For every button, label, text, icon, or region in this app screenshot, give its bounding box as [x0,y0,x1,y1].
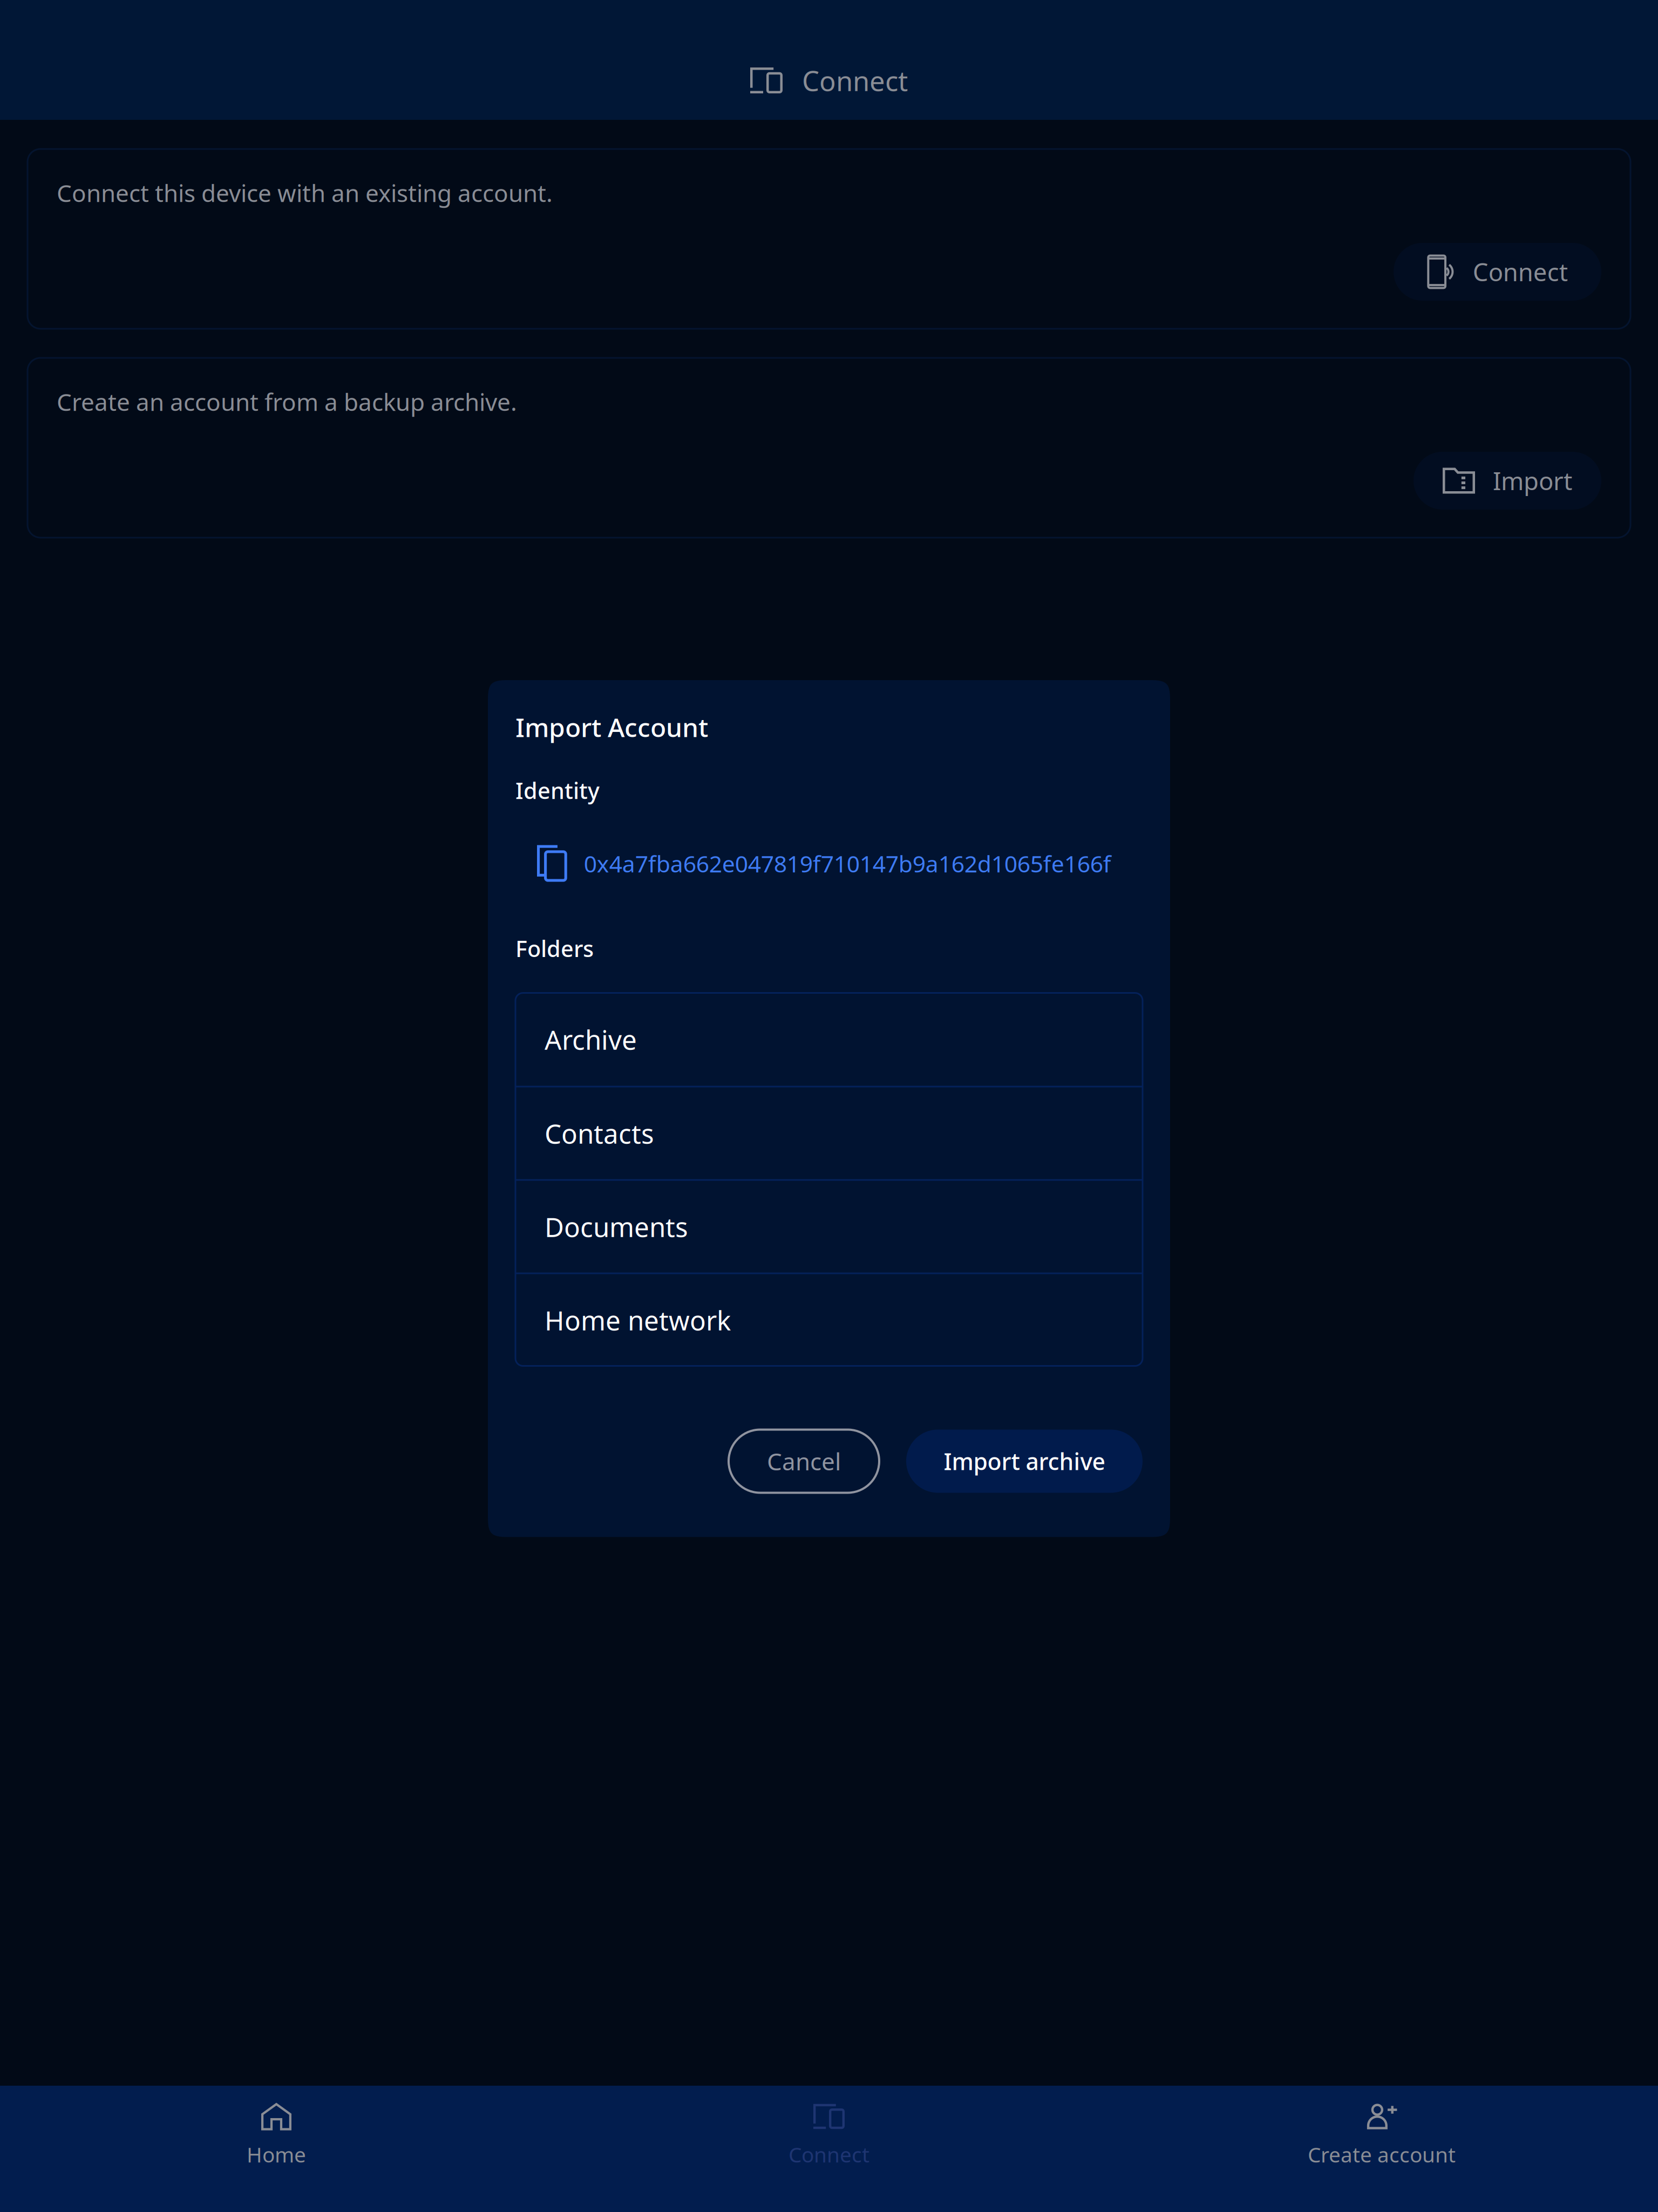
button[interactable]: Home [0,2086,553,2212]
button[interactable]: Home network [515,1273,1143,1366]
staticText: Connect this device with an existing acc… [57,177,553,209]
button[interactable]: Documents [515,1179,1143,1273]
staticText: Identity [515,775,600,805]
button[interactable]: Import archive [906,1430,1143,1493]
staticText: Home [247,2141,306,2168]
staticText: Cancel [767,1445,841,1477]
staticText: 0x4a7fba662e047819f710147b9a162d1065fe16… [584,848,1111,879]
staticText: Connect [802,62,908,99]
button[interactable]: Cancel [729,1430,879,1493]
staticText: Archive [545,1022,637,1057]
staticText: Import [1493,464,1572,497]
button[interactable]: 0x4a7fba662e047819f710147b9a162d1065fe16… [515,827,1111,900]
staticText: Connect [789,2141,869,2168]
staticText: Import Account [515,710,708,744]
staticText: Folders [515,934,594,963]
button[interactable]: Create account [1105,2086,1658,2212]
button[interactable]: Import [1414,452,1601,510]
staticText: Documents [545,1209,688,1244]
button[interactable]: Archive [515,993,1143,1086]
button[interactable]: Contacts [515,1086,1143,1179]
staticText: Create account [1308,2141,1456,2168]
staticText: Contacts [545,1116,654,1151]
button[interactable]: Connect [1394,243,1601,301]
staticText: Home network [545,1302,731,1338]
button[interactable]: Connect [553,2086,1105,2212]
staticText: Connect [1473,256,1568,288]
staticText: Create an account from a backup archive. [57,386,517,417]
staticText: Import archive [944,1446,1105,1477]
